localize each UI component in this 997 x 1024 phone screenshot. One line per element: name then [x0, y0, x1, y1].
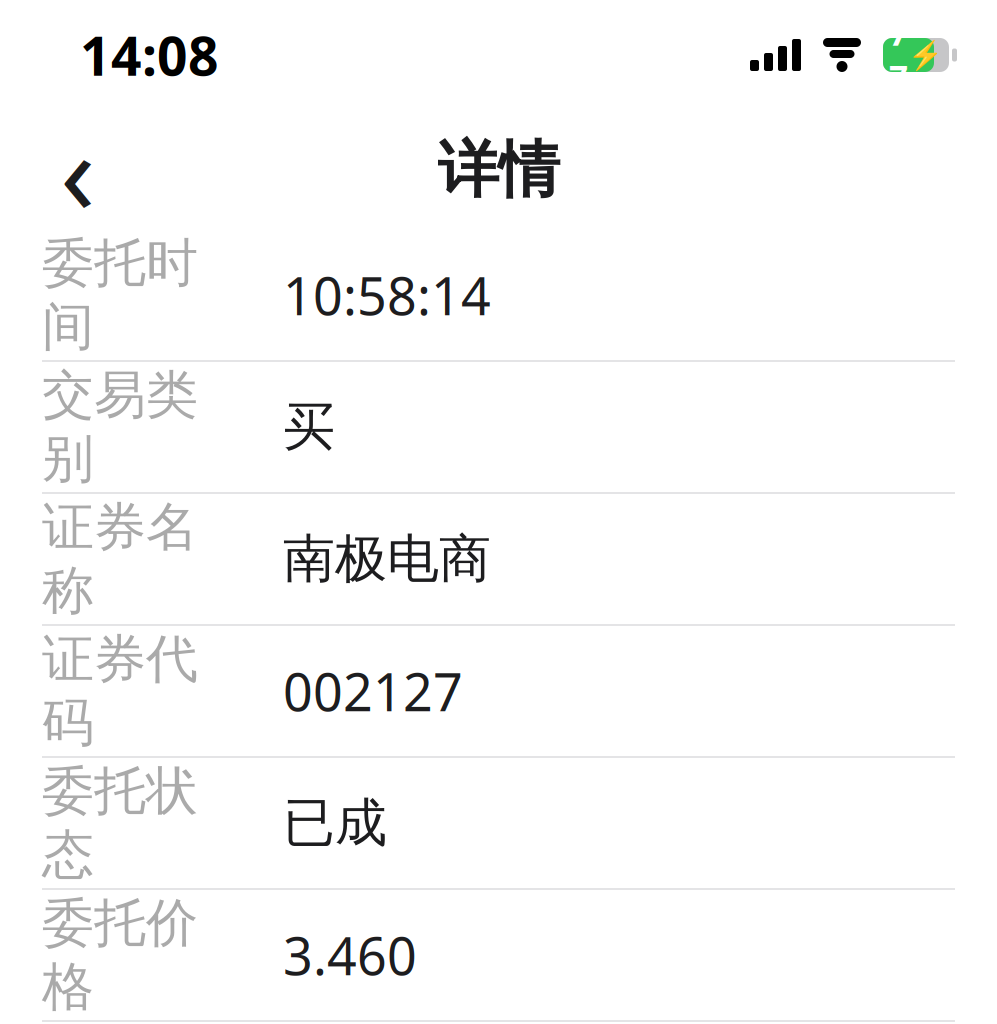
staticText: ⚡: [908, 39, 943, 71]
staticText: 买: [283, 395, 335, 459]
staticText: 3.460: [283, 920, 417, 990]
staticText: 交易类别: [42, 363, 198, 491]
staticText: 详情: [437, 132, 559, 208]
staticText: 委托价格: [42, 891, 198, 1019]
staticText: 002127: [283, 656, 463, 726]
staticText: 77: [889, 11, 908, 99]
staticText: 证券代码: [42, 627, 198, 755]
staticText: 10:58:14: [283, 260, 491, 330]
staticText: 南极电商: [283, 527, 491, 591]
staticText: 已成: [283, 791, 387, 855]
staticText: 委托状态: [42, 759, 198, 887]
staticText: 14:08: [80, 20, 219, 90]
staticText: ‹: [60, 94, 96, 246]
staticText: 委托时间: [42, 231, 198, 359]
button[interactable]: 返回: [32, 124, 124, 216]
staticText: 证券名称: [42, 495, 198, 623]
